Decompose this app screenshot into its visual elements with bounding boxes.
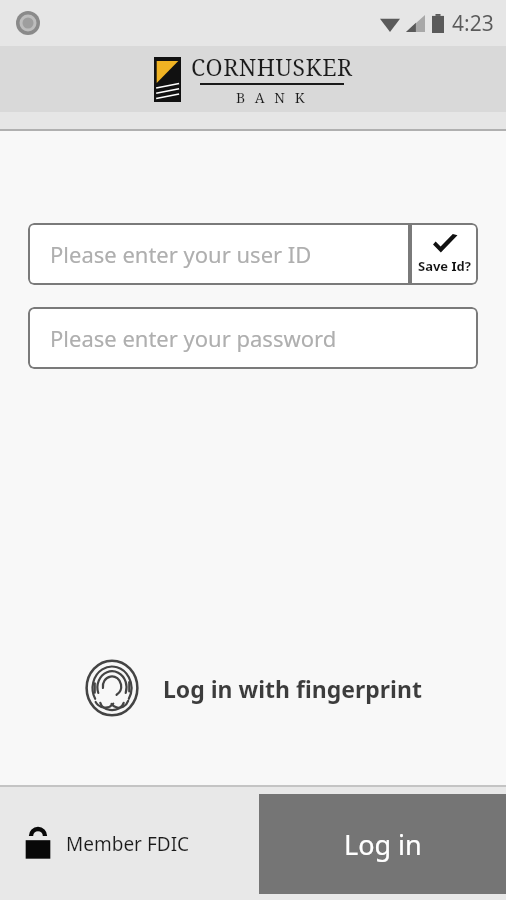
button[interactable]: Log in with fingerprint	[0, 653, 506, 723]
staticText: Log in	[344, 826, 422, 863]
staticText: B A N K	[236, 88, 308, 107]
staticText: CORNHUSKER	[191, 51, 353, 82]
button[interactable]: Please enter your user ID	[28, 223, 410, 285]
staticText: 4:23	[452, 9, 494, 38]
staticText: Please enter your user ID	[50, 239, 312, 269]
button[interactable]: Log in	[259, 794, 506, 894]
staticText: Log in with fingerprint	[163, 673, 422, 704]
staticText: Save Id?	[418, 257, 471, 275]
staticText: Please enter your password	[50, 323, 337, 353]
button[interactable]: Save Id	[410, 223, 478, 285]
button[interactable]: Please enter your password	[28, 307, 478, 369]
staticText: Member FDIC	[66, 831, 190, 857]
button[interactable]: Member FDIC	[24, 827, 190, 860]
